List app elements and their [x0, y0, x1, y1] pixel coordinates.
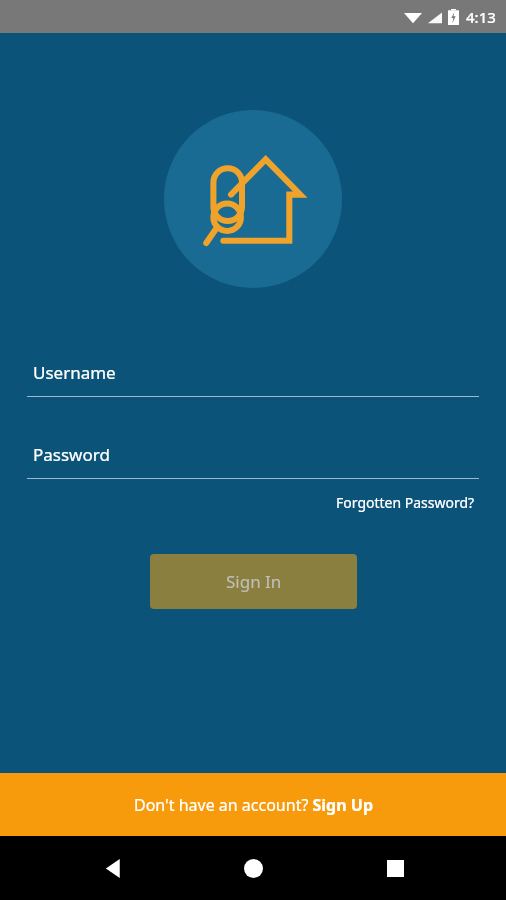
staticText: Username [33, 361, 116, 384]
staticText: Password [33, 443, 110, 466]
button[interactable]: Back [82, 838, 142, 898]
button[interactable]: Forgotten Password? [332, 489, 479, 516]
staticText: Sign In [226, 570, 282, 593]
button[interactable]: Username [27, 348, 479, 396]
button[interactable]: Don't have an account? Sign Up [0, 773, 506, 836]
staticText: Don't have an account? Sign Up [134, 794, 373, 816]
staticText: 4:13 [466, 7, 496, 27]
other: App logo [198, 144, 308, 254]
button[interactable]: Password [27, 430, 479, 478]
staticText: Forgotten Password? [336, 493, 475, 512]
button[interactable]: Recent apps [365, 838, 425, 898]
button[interactable]: Sign In [150, 554, 357, 609]
button[interactable]: Home [223, 838, 283, 898]
